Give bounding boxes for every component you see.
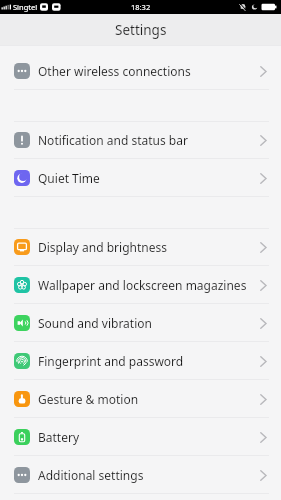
staticText: Gesture & motion [38, 391, 139, 407]
button[interactable]: Fingerprint and password [0, 342, 281, 380]
button[interactable]: Quiet Time [0, 159, 281, 197]
button[interactable]: Additional settings [0, 456, 281, 494]
staticText: Singtel [13, 2, 38, 12]
button[interactable]: Wallpaper and lockscreen magazines [0, 266, 281, 304]
button[interactable]: Gesture & motion [0, 380, 281, 418]
staticText: 18:32 [131, 2, 151, 12]
button[interactable]: Notification and status bar [0, 121, 281, 159]
button[interactable]: Battery [0, 418, 281, 456]
staticText: Notification and status bar [38, 132, 188, 148]
button[interactable]: Display and brightness [0, 228, 281, 266]
staticText: Battery [38, 429, 80, 445]
button[interactable]: Other wireless connections [0, 52, 281, 90]
staticText: Quiet Time [38, 170, 100, 186]
staticText: Wallpaper and lockscreen magazines [38, 277, 247, 293]
staticText: Other wireless connections [38, 63, 191, 79]
staticText: Additional settings [38, 467, 144, 483]
staticText: Sound and vibration [38, 315, 152, 331]
staticText: Fingerprint and password [38, 353, 184, 369]
staticText: Settings [115, 21, 167, 39]
button[interactable]: Sound and vibration [0, 304, 281, 342]
staticText: Display and brightness [38, 239, 167, 255]
